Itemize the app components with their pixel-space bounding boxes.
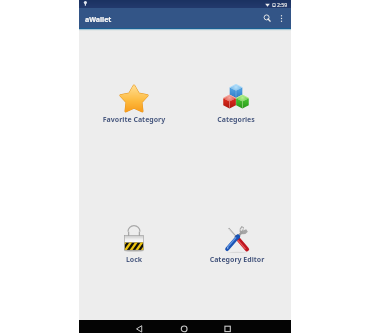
button[interactable]: Lock [96,225,172,265]
button[interactable]: Favorite Category [96,85,172,125]
staticText: Favorite Category [96,115,172,125]
staticText: Lock [96,255,172,265]
button[interactable]: More options [275,12,287,24]
button[interactable]: Categories [198,85,274,125]
button[interactable]: Search [259,10,275,26]
staticText: Category Editor [199,255,275,265]
staticText: 2:59 [277,1,288,8]
button[interactable]: Category Editor [199,225,275,265]
staticText: Categories [198,115,274,125]
staticText: aWallet [85,15,112,25]
